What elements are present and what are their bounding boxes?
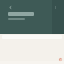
button[interactable] <box>8 12 34 16</box>
button[interactable]: More options <box>53 5 58 10</box>
button[interactable]: Back <box>8 5 13 10</box>
button[interactable]: Add <box>59 58 62 61</box>
